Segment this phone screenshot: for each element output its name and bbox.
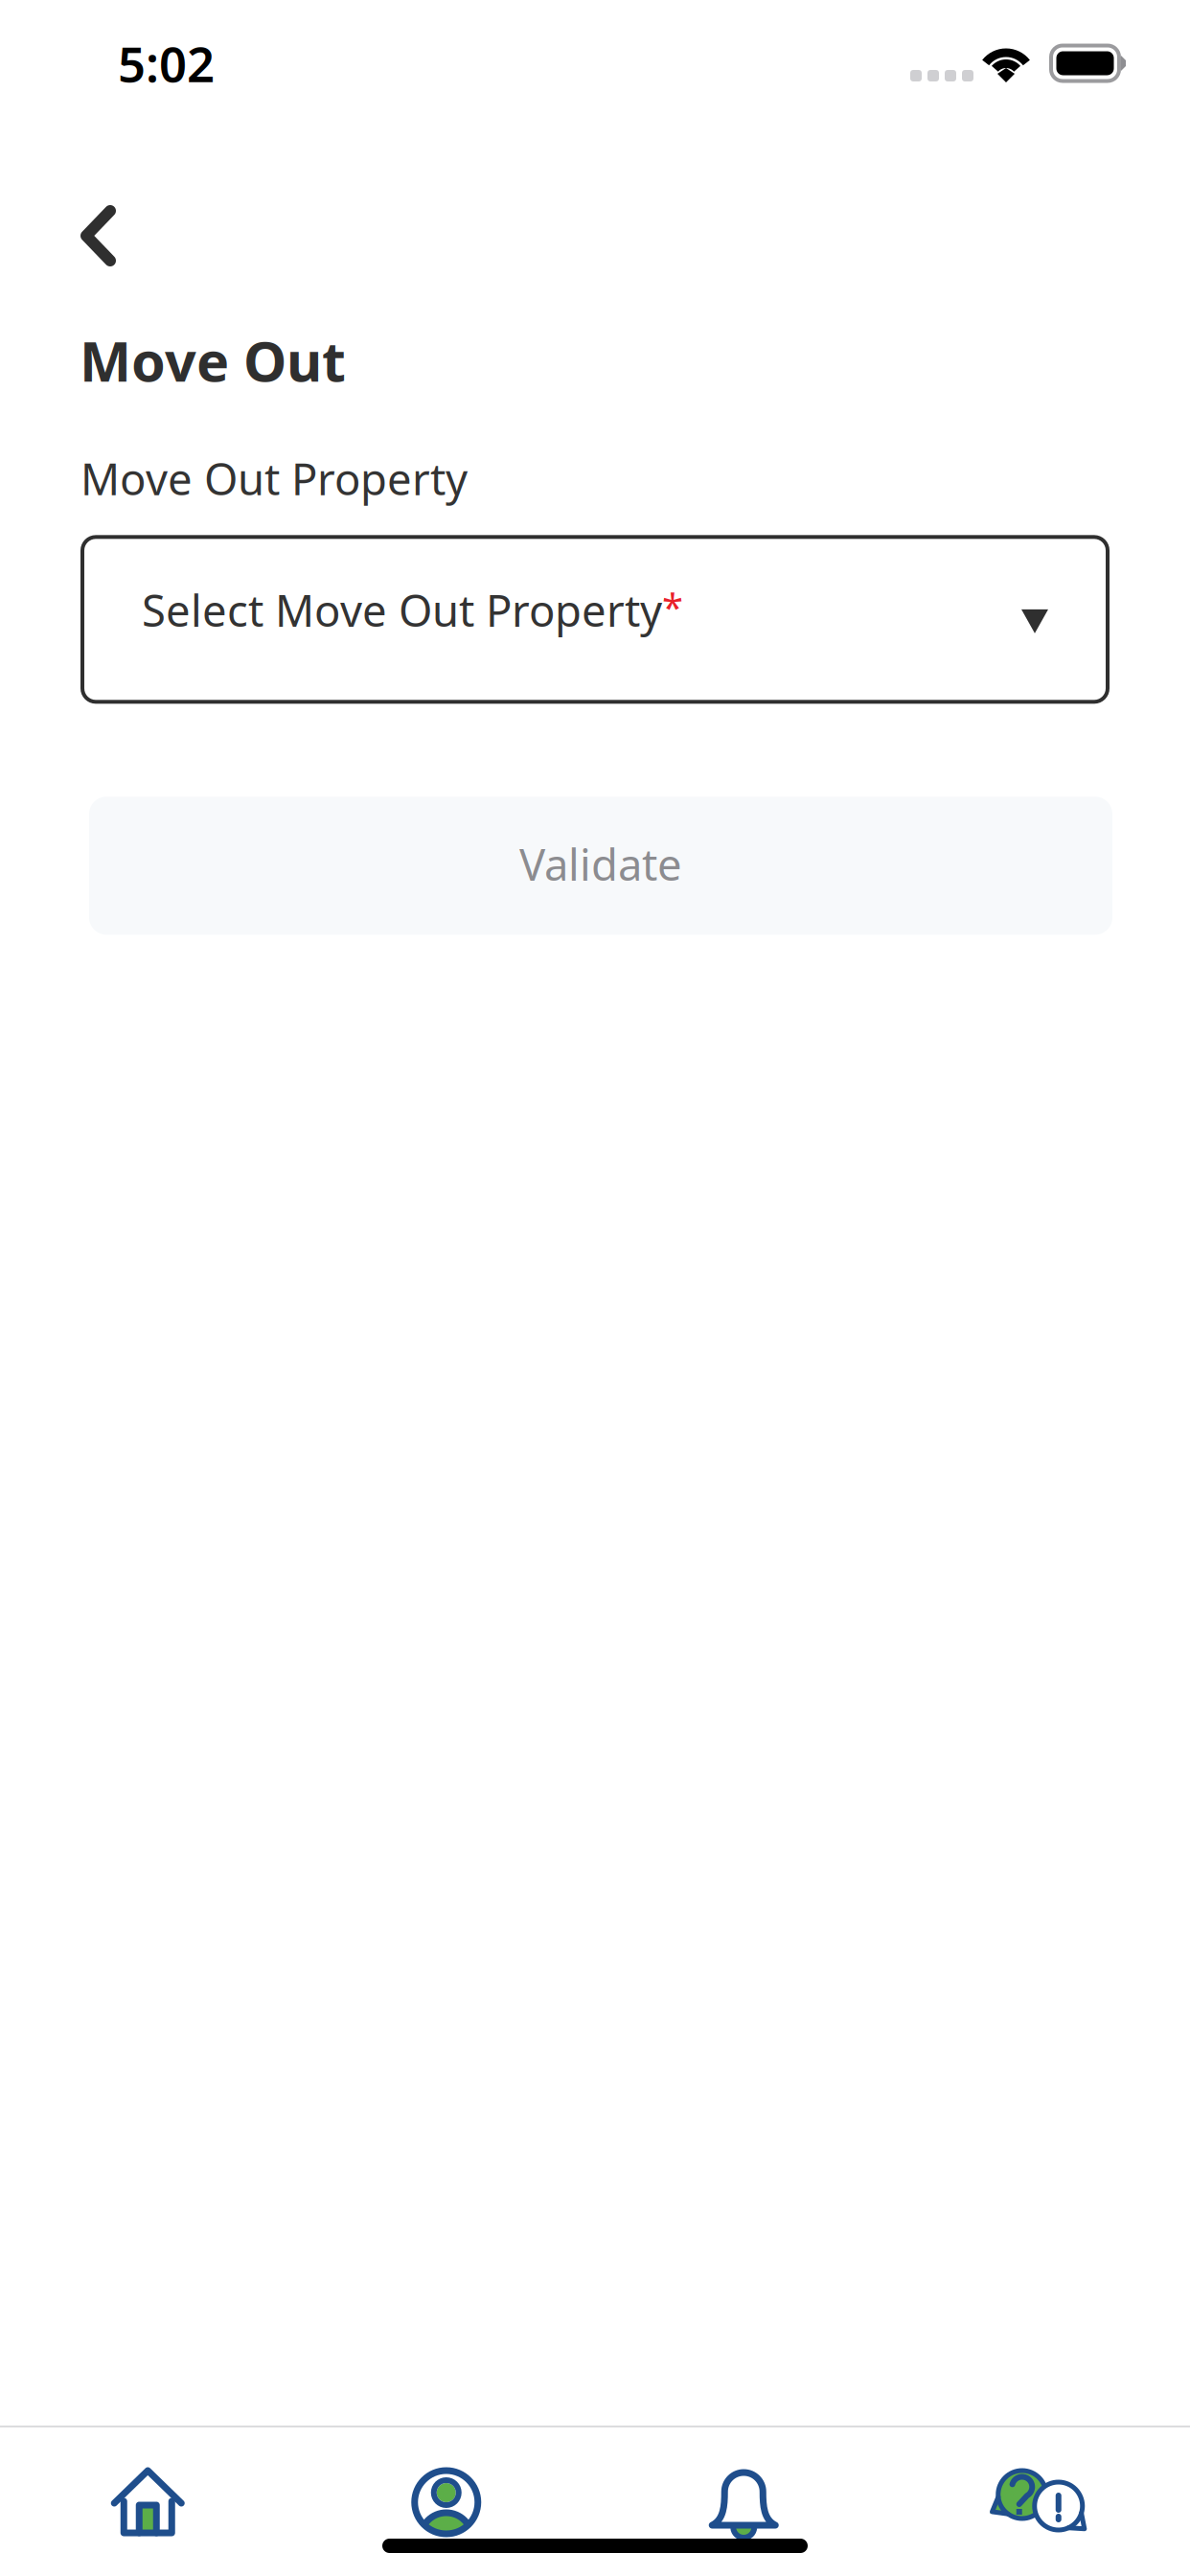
button[interactable]: Back [0,188,156,284]
staticText: Select Move Out Property [142,581,662,639]
staticText: Move Out Property [80,450,468,507]
button[interactable]: Profile [297,2448,595,2557]
button[interactable]: Home [0,2448,297,2557]
staticText: * [662,581,683,632]
button[interactable]: Support [892,2448,1190,2557]
button[interactable]: Validate [89,797,1112,935]
button[interactable]: Select Move Out Property [82,537,1108,702]
staticText: Move Out [80,324,346,397]
staticText: 5:02 [118,31,215,96]
button[interactable]: Notifications [595,2448,892,2557]
staticText: Validate [519,835,682,893]
